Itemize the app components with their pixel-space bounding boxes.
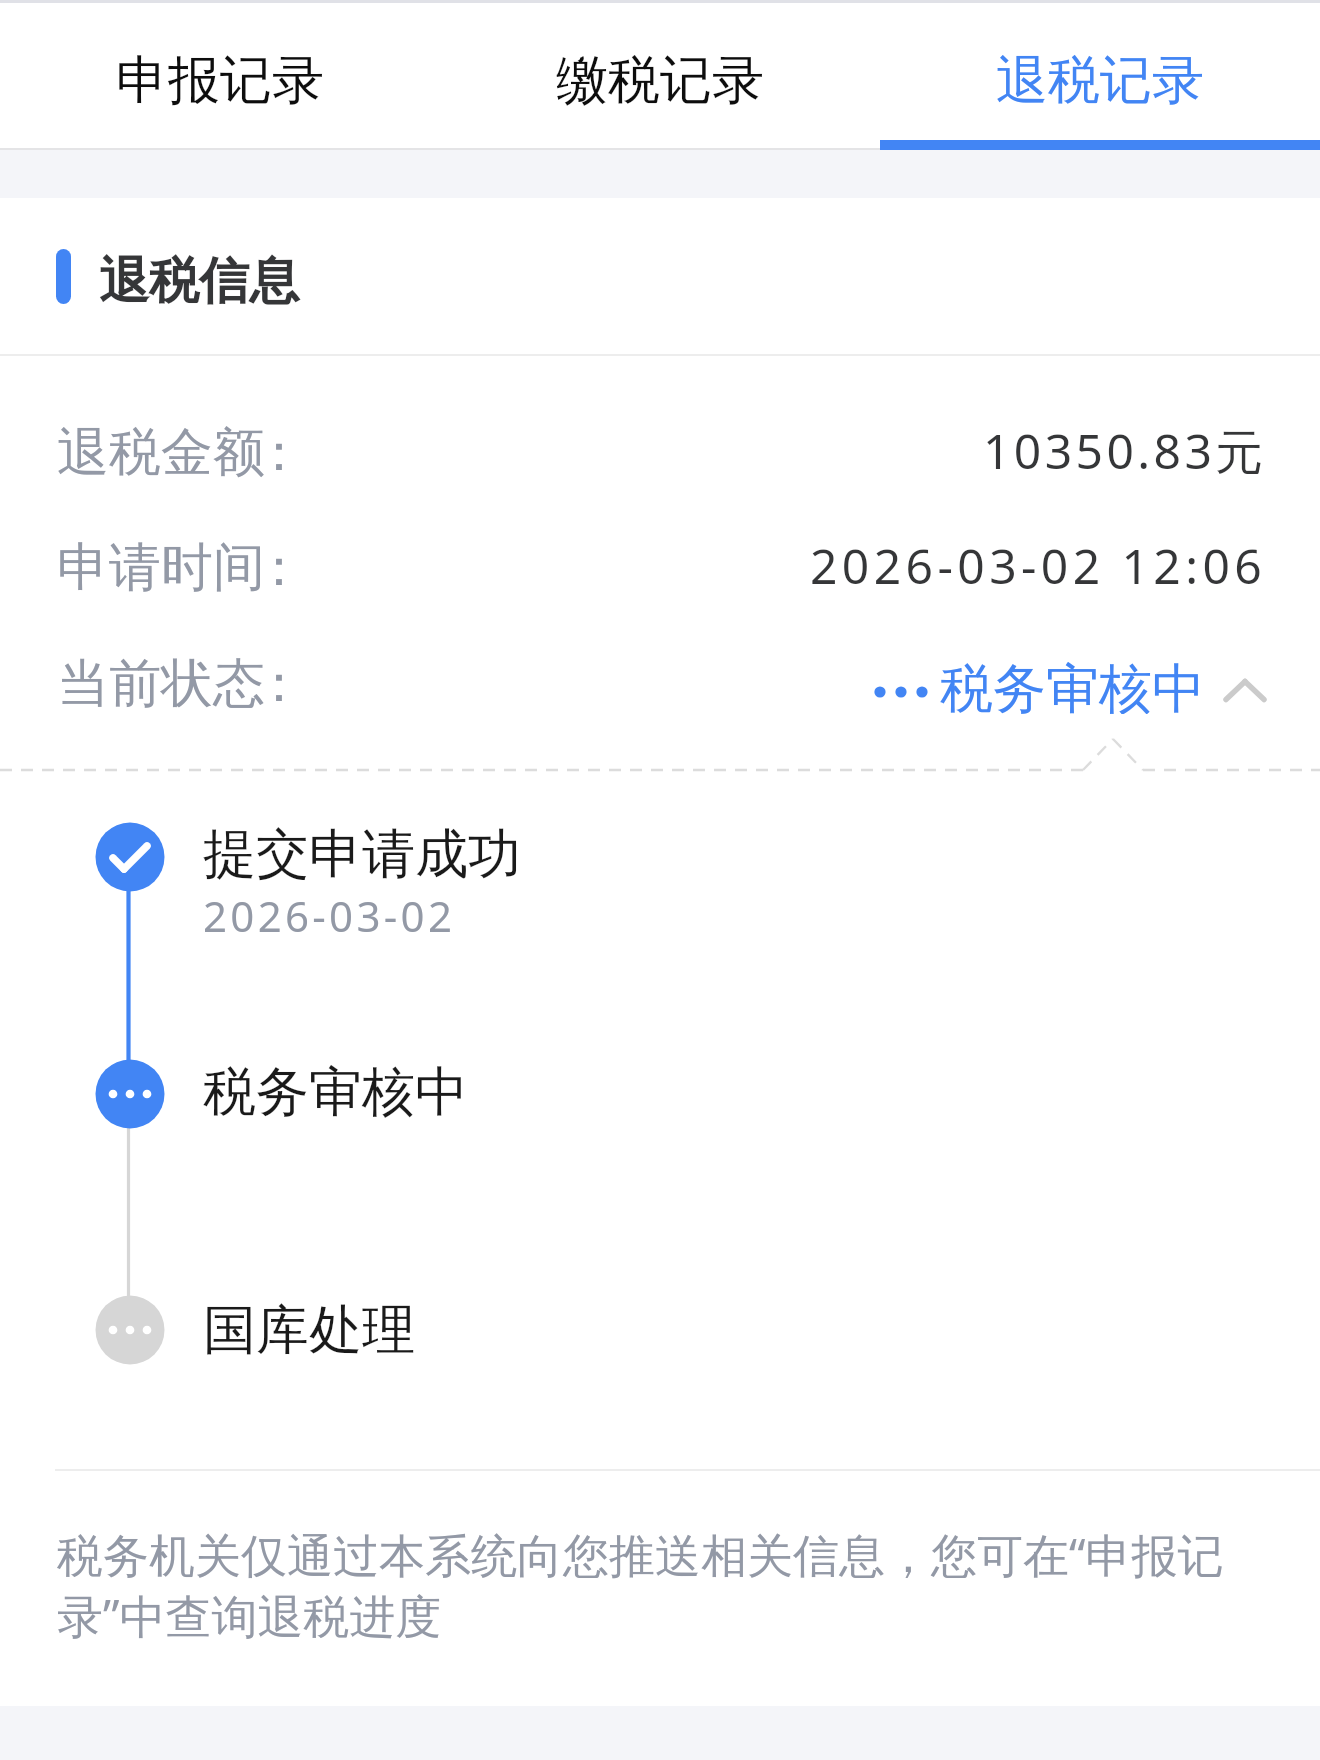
staticText: 退税金额 [57,420,265,478]
staticText: 退税记录 [996,48,1204,114]
staticText: ： [253,420,305,478]
staticText: 申请时间 [57,535,265,593]
staticText: 申报记录 [116,48,324,114]
staticText: 税务审核中 [940,656,1205,714]
button[interactable]: 退税记录 [880,3,1320,150]
staticText: 退税信息 [99,250,299,313]
staticText: 国库处理 [203,1297,415,1364]
button[interactable]: 当前状态 [57,653,1267,711]
staticText: 提交申请成功 [203,821,521,888]
staticText: 税务机关仅通过本系统向您推送相关信息，您可在“申报记录”中查询退税进度 [57,1523,1270,1646]
staticText: 10350.83元 [983,418,1267,476]
staticText: 税务审核中 [203,1059,468,1126]
staticText: 缴税记录 [556,48,764,114]
staticText: ： [253,651,305,709]
staticText: 2026-03-02 [203,887,456,944]
staticText: ： [253,535,305,593]
staticText: 2026-03-02 12:06 [810,533,1267,591]
button[interactable]: 收起状态详情 [1223,653,1267,711]
button[interactable]: 申报记录 [0,3,440,150]
staticText: 当前状态 [57,651,265,709]
button[interactable]: 缴税记录 [440,3,880,150]
